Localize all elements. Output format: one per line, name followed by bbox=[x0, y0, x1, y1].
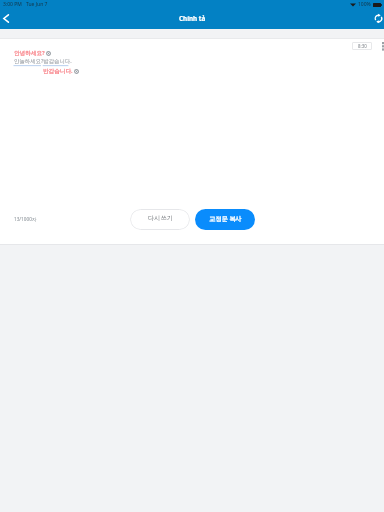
button[interactable]: Back bbox=[0, 8, 11, 28]
staticText: 다시쓰기 bbox=[148, 214, 173, 222]
button[interactable]: 교정문 복사 bbox=[195, 209, 255, 230]
button[interactable]: 8:30 bbox=[352, 42, 372, 50]
staticText: 교정문 복사 bbox=[209, 214, 242, 222]
button[interactable]: 안녕하세요? bbox=[14, 49, 51, 57]
staticText: Chính tả bbox=[179, 14, 206, 23]
staticText: 13/1000자 bbox=[14, 216, 37, 222]
button[interactable]: More options bbox=[380, 40, 384, 52]
staticText: 반갑습니다. bbox=[43, 67, 73, 75]
staticText: 100% bbox=[358, 1, 371, 8]
staticText: 안녕하세요? bbox=[14, 49, 45, 57]
button[interactable]: 다시쓰기 bbox=[130, 209, 190, 230]
button[interactable]: Refresh bbox=[372, 8, 384, 28]
staticText: Tue Jun 7 bbox=[26, 1, 48, 8]
staticText: 안놀하세요?밥갑습니다. bbox=[14, 57, 72, 64]
staticText: 8:30 bbox=[358, 43, 367, 49]
button[interactable]: 반갑습니다. bbox=[43, 67, 79, 75]
staticText: 3:00 PM bbox=[3, 1, 22, 8]
